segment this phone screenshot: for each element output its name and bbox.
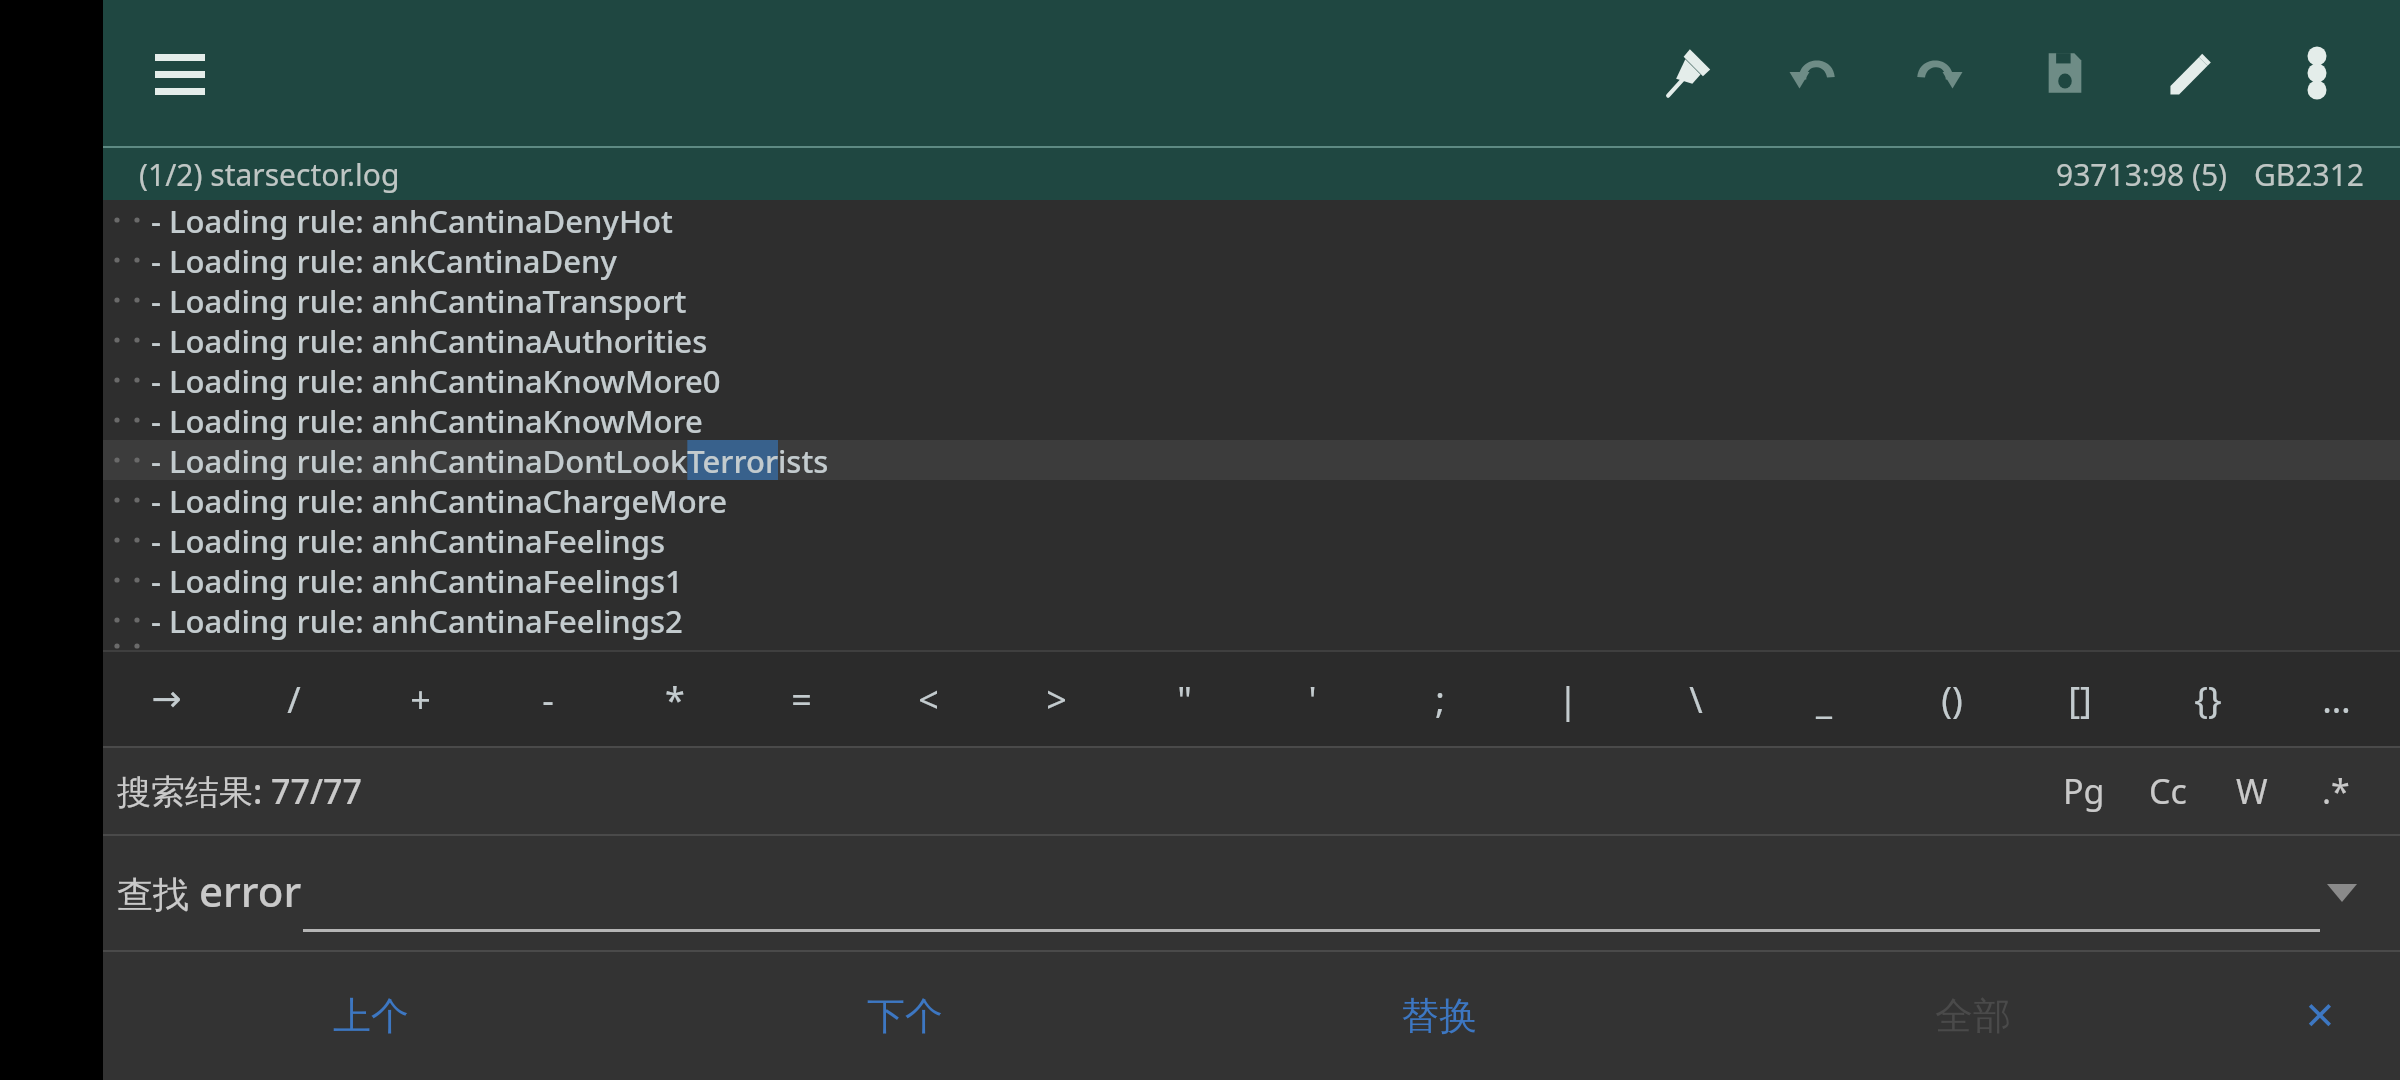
button[interactable]: Insert /	[230, 652, 357, 746]
button[interactable]: Insert >	[992, 652, 1120, 746]
staticText: 搜索结果: 77/77	[117, 768, 362, 814]
button[interactable]: Edit	[2128, 0, 2254, 146]
staticText: =	[791, 675, 812, 724]
staticText: ;	[1435, 675, 1445, 724]
button[interactable]: Insert {}	[2144, 652, 2272, 746]
button[interactable]: Save	[2002, 0, 2128, 146]
staticText: - Loading rule: anhCantinaKnowMore0	[151, 360, 721, 400]
staticText: .*	[2322, 768, 2350, 814]
staticText: →	[151, 678, 182, 720]
staticText: - Loading rule: anhCantinaRobot	[151, 640, 632, 652]
staticText: ()	[1941, 675, 1963, 724]
staticText: >	[1046, 675, 1067, 724]
staticText: []	[2068, 675, 2092, 724]
staticText: \	[1689, 675, 1703, 724]
button[interactable]: Insert ;	[1376, 652, 1504, 746]
button[interactable]: Insert *	[611, 652, 738, 746]
button[interactable]: Insert []	[2016, 652, 2144, 746]
staticText: +	[410, 675, 431, 724]
staticText: …	[2322, 675, 2351, 724]
button[interactable]: Cc	[2126, 748, 2210, 834]
staticText: 全部	[1935, 992, 2011, 1040]
button[interactable]: Insert +	[357, 652, 484, 746]
staticText: - Loading rule: anhCantinaAuthorities	[151, 320, 708, 360]
staticText: (1/2) starsector.log	[139, 154, 400, 195]
staticText: - Loading rule: anhCantinaTransport	[151, 280, 687, 320]
staticText: _	[1816, 675, 1832, 724]
button[interactable]: - Loading rule: anhCantinaDenyHot	[103, 200, 2400, 652]
staticText: '	[1308, 675, 1317, 724]
staticText: "	[1177, 675, 1192, 724]
staticText: W	[2236, 768, 2268, 814]
button[interactable]: Close	[2240, 952, 2400, 1080]
button[interactable]: Insert <	[865, 652, 992, 746]
button[interactable]: W	[2210, 748, 2294, 834]
staticText: - Loading rule: anhCantinaKnowMore	[151, 400, 703, 440]
staticText: Cc	[2149, 768, 2187, 814]
button[interactable]: Menu	[125, 18, 235, 128]
staticText: 93713:98 (5)	[2056, 154, 2228, 195]
staticText: - Loading rule: anhCantinaDontLookTerror…	[151, 440, 829, 480]
staticText: - Loading rule: anhCantinaFeelings1	[151, 560, 683, 600]
button[interactable]: 下个	[638, 952, 1172, 1080]
button[interactable]: Pin	[1624, 0, 1750, 146]
button[interactable]: .*	[2294, 748, 2378, 834]
staticText: 替换	[1401, 992, 1477, 1040]
staticText: - Loading rule: ankCantinaDeny	[151, 240, 617, 280]
button[interactable]: Insert |	[1504, 652, 1632, 746]
staticText: -	[542, 675, 554, 724]
button[interactable]: Insert =	[738, 652, 865, 746]
button[interactable]: Insert _	[1760, 652, 1888, 746]
staticText: 查找	[117, 872, 189, 917]
button[interactable]: Insert ()	[1888, 652, 2016, 746]
staticText: /	[287, 675, 301, 724]
button[interactable]: Insert '	[1248, 652, 1376, 746]
staticText: - Loading rule: anhCantinaFeelings	[151, 520, 666, 560]
staticText: {}	[2194, 675, 2222, 724]
staticText: - Loading rule: anhCantinaFeelings2	[151, 600, 683, 640]
staticText: ✕	[2304, 994, 2336, 1038]
staticText: <	[918, 675, 939, 724]
staticText: GB2312	[2254, 154, 2364, 195]
button[interactable]: Redo	[1876, 0, 2002, 146]
staticText: 上个	[333, 992, 409, 1040]
button[interactable]: Undo	[1750, 0, 1876, 146]
button[interactable]: Search history	[2297, 848, 2387, 938]
staticText: *	[665, 675, 685, 724]
button[interactable]: Insert "	[1120, 652, 1248, 746]
staticText: |	[1558, 675, 1578, 724]
button[interactable]: Insert \	[1632, 652, 1760, 746]
button[interactable]: Pg	[2042, 748, 2126, 834]
button[interactable]: Insert -	[484, 652, 611, 746]
staticText: Pg	[2063, 768, 2105, 814]
staticText: - Loading rule: anhCantinaDenyHot	[151, 200, 673, 240]
staticText: - Loading rule: anhCantinaChargeMore	[151, 480, 727, 520]
button[interactable]: More options	[2254, 0, 2380, 146]
button[interactable]: 替换	[1172, 952, 1706, 1080]
staticText: error	[199, 862, 302, 919]
staticText: 下个	[867, 992, 943, 1040]
button[interactable]: Insert →	[103, 652, 230, 746]
button[interactable]: 上个	[103, 952, 638, 1080]
button[interactable]: Insert …	[2272, 652, 2400, 746]
